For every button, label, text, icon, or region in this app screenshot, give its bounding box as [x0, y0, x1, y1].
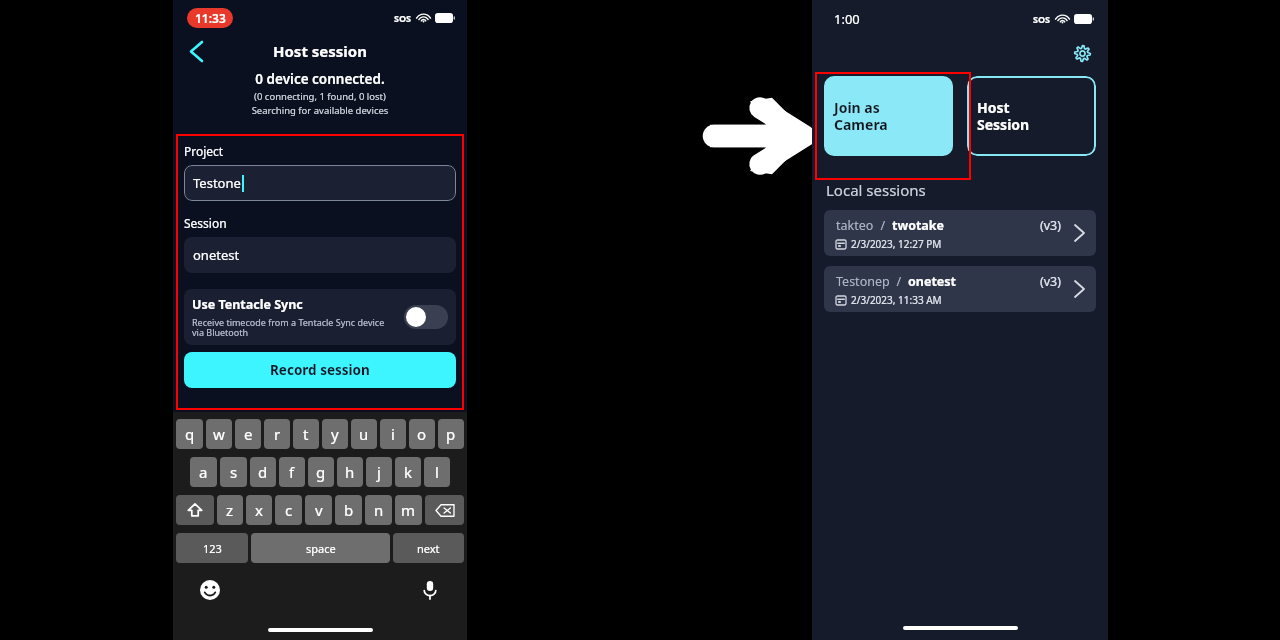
button[interactable]: Voice input	[419, 579, 441, 601]
staticText: onetest	[193, 246, 240, 264]
button[interactable]: f	[279, 457, 305, 487]
staticText: Session	[184, 215, 227, 231]
staticText: Host Session	[977, 98, 1030, 134]
staticText: /	[890, 273, 908, 290]
button[interactable]: h	[337, 457, 363, 487]
staticText: (v3)	[1040, 217, 1062, 234]
staticText: 11:33	[195, 10, 226, 26]
staticText: Record session	[270, 361, 370, 379]
staticText: j	[377, 462, 381, 482]
button[interactable]: takteo	[824, 210, 1096, 256]
button[interactable]: Record session	[184, 352, 456, 388]
staticText: twotake	[892, 217, 945, 234]
button[interactable]: Host Session	[967, 76, 1096, 156]
staticText: space	[306, 541, 336, 556]
staticText: (0 connecting, 1 found, 0 lost)	[173, 90, 467, 103]
button[interactable]: q	[176, 419, 203, 449]
button[interactable]: 123	[176, 533, 248, 563]
staticText: Join as Camera	[834, 98, 888, 134]
staticText: c	[285, 500, 293, 520]
staticText: next	[417, 541, 440, 556]
staticText: p	[446, 424, 456, 444]
staticText: 0 device connected.	[173, 70, 467, 88]
staticText: 1:00	[834, 10, 860, 28]
button[interactable]: c	[275, 495, 302, 525]
staticText: s	[230, 462, 238, 482]
button[interactable]: z	[217, 495, 243, 525]
staticText: w	[213, 424, 225, 444]
button[interactable]: g	[308, 457, 334, 487]
staticText: d	[258, 462, 268, 482]
button[interactable]: Settings	[1070, 41, 1094, 65]
staticText: 123	[203, 541, 222, 556]
staticText: /	[874, 217, 892, 234]
button[interactable]: onetest	[184, 237, 456, 273]
button[interactable]: Testonep	[824, 266, 1096, 312]
staticText: 2/3/2023, 12:27 PM	[851, 237, 942, 251]
button[interactable]: Testone	[184, 165, 456, 201]
button[interactable]: space	[251, 533, 390, 563]
button[interactable]: Emoji	[199, 579, 221, 601]
staticText: (v3)	[1040, 273, 1062, 290]
button[interactable]: a	[190, 457, 217, 487]
staticText: m	[401, 500, 416, 520]
button[interactable]: Use Tentacle Sync toggle	[404, 305, 448, 329]
staticText: i	[391, 424, 395, 444]
button[interactable]: Join as Camera	[824, 76, 953, 156]
button[interactable]: b	[335, 495, 362, 525]
staticText: Testone	[193, 174, 241, 192]
staticText: h	[345, 462, 355, 482]
button[interactable]: j	[366, 457, 392, 487]
staticText: e	[244, 424, 253, 444]
button[interactable]: e	[235, 419, 261, 449]
button[interactable]: u	[351, 419, 377, 449]
staticText: r	[274, 424, 281, 444]
button[interactable]: Backspace	[425, 495, 464, 525]
staticText: Local sessions	[826, 180, 926, 200]
button[interactable]: next	[393, 533, 464, 563]
button[interactable]: i	[380, 419, 406, 449]
staticText: l	[435, 462, 439, 482]
staticText: t	[303, 424, 309, 444]
staticText: Host session	[273, 41, 367, 61]
staticText: k	[404, 462, 413, 482]
button[interactable]: m	[395, 495, 422, 525]
staticText: u	[359, 424, 369, 444]
staticText: SOS	[1033, 13, 1051, 25]
button[interactable]: v	[305, 495, 332, 525]
button[interactable]: l	[424, 457, 450, 487]
staticText: v	[315, 500, 323, 520]
staticText: Testonep	[836, 273, 890, 290]
staticText: 2/3/2023, 11:33 AM	[851, 293, 942, 307]
button[interactable]: s	[220, 457, 247, 487]
staticText: Receive timecode from a Tentacle Sync de…	[192, 316, 398, 339]
staticText: q	[185, 424, 195, 444]
button[interactable]: w	[206, 419, 232, 449]
button[interactable]: p	[438, 419, 464, 449]
staticText: n	[374, 500, 384, 520]
button[interactable]: d	[250, 457, 276, 487]
button[interactable]: k	[395, 457, 421, 487]
button[interactable]: n	[365, 495, 392, 525]
staticText: takteo	[836, 217, 874, 234]
button[interactable]: Shift	[176, 495, 214, 525]
button[interactable]: o	[409, 419, 435, 449]
button[interactable]: Back	[179, 36, 213, 66]
staticText: y	[331, 424, 339, 444]
staticText: onetest	[908, 273, 956, 290]
staticText: b	[344, 500, 354, 520]
button[interactable]: t	[293, 419, 319, 449]
staticText: SOS	[394, 12, 412, 24]
staticText: x	[255, 500, 263, 520]
button[interactable]: x	[246, 495, 272, 525]
staticText: Use Tentacle Sync	[192, 296, 303, 313]
staticText: Project	[184, 143, 224, 159]
staticText: f	[289, 462, 295, 482]
button[interactable]: y	[322, 419, 348, 449]
staticText: Searching for available devices	[173, 104, 467, 117]
button[interactable]: r	[264, 419, 290, 449]
button[interactable]: Use Tentacle Sync	[184, 289, 456, 345]
staticText: a	[199, 462, 208, 482]
staticText: g	[316, 462, 326, 482]
staticText: o	[417, 424, 427, 444]
